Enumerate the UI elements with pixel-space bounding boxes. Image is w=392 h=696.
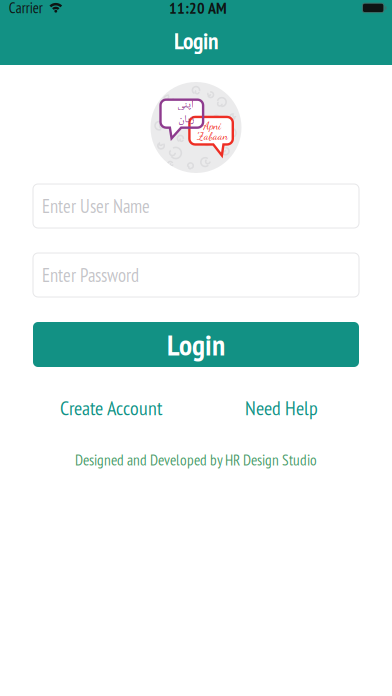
staticText: Apni <box>204 120 222 132</box>
staticText: Carrier <box>9 0 43 17</box>
button[interactable]: Enter Password <box>33 253 359 297</box>
button[interactable]: Login <box>33 322 359 367</box>
staticText: Login <box>174 25 218 56</box>
staticText: Create Account <box>60 395 163 421</box>
staticText: Zabaan <box>197 130 228 143</box>
button[interactable]: Need Help <box>245 395 318 421</box>
staticText: Designed and Developed by HR Design Stud… <box>75 450 317 470</box>
staticText: Need Help <box>245 395 318 421</box>
button[interactable]: Create Account <box>60 395 163 421</box>
staticText: Login <box>167 325 225 363</box>
button[interactable]: Enter User Name <box>33 184 359 228</box>
staticText: Enter User Name <box>42 194 150 218</box>
staticText: 11:20 AM <box>169 0 227 18</box>
staticText: اپنی <box>177 96 194 114</box>
staticText: زبان <box>178 111 194 129</box>
staticText: Enter Password <box>42 263 139 287</box>
